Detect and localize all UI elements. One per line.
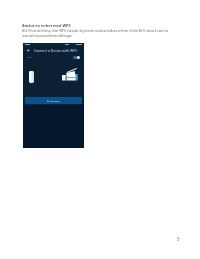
staticText: WPS — [27, 56, 32, 59]
button[interactable]: Back — [25, 46, 31, 54]
button[interactable]: WPS — [27, 54, 80, 60]
staticText: Connect a Device with WPS — [34, 48, 78, 52]
staticText: Connect — [50, 99, 60, 102]
button[interactable]: Connect — [25, 97, 82, 104]
staticText: Anslut en enhet med WPS — [22, 23, 71, 28]
staticText: Wi-Fi Protected Setup (eller WPS) erbjud… — [22, 29, 174, 38]
staticText: 5 — [177, 236, 180, 242]
